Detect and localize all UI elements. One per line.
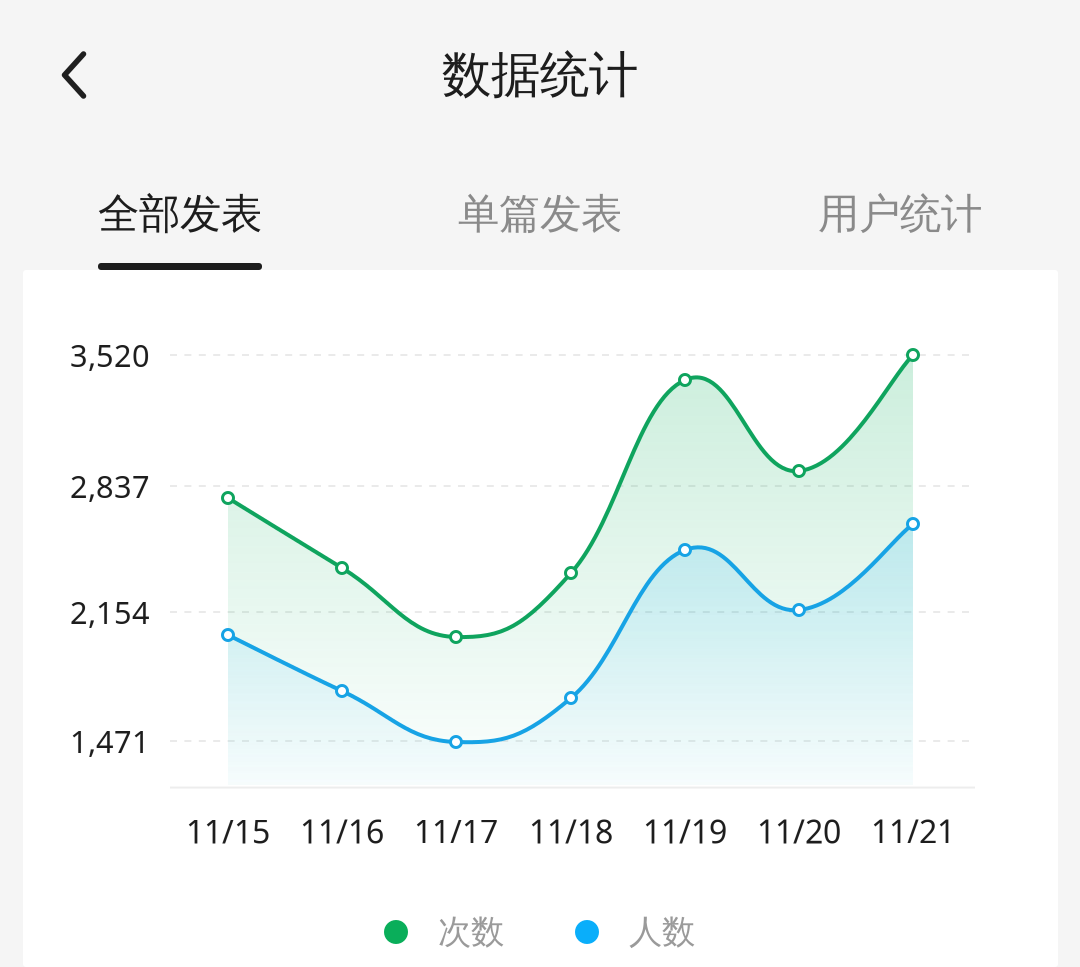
- staticText: 11/16: [300, 810, 384, 852]
- staticText: 11/15: [186, 810, 270, 852]
- staticText: 11/21: [871, 810, 955, 852]
- button[interactable]: Back: [27, 28, 121, 122]
- staticText: 用户统计: [818, 189, 982, 239]
- staticText: 11/19: [643, 810, 727, 852]
- staticText: 11/17: [414, 810, 498, 852]
- staticText: 2,154: [70, 592, 150, 632]
- staticText: 数据统计: [442, 45, 638, 105]
- staticText: 11/20: [757, 810, 841, 852]
- staticText: 3,520: [70, 335, 150, 375]
- button[interactable]: 用户统计: [720, 186, 1080, 269]
- staticText: 单篇发表: [458, 189, 622, 239]
- staticText: 次数: [438, 911, 504, 952]
- staticText: 2,837: [70, 466, 150, 506]
- button[interactable]: 全部发表: [0, 186, 360, 269]
- staticText: 人数: [629, 911, 695, 952]
- staticText: 11/18: [529, 810, 613, 852]
- staticText: 1,471: [70, 721, 150, 761]
- staticText: 全部发表: [98, 189, 262, 239]
- button[interactable]: 单篇发表: [360, 186, 720, 269]
